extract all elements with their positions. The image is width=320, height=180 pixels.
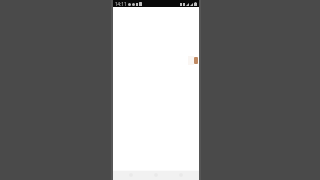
button[interactable]: Accent marker (194, 57, 198, 64)
button[interactable]: Home (149, 170, 163, 180)
button[interactable]: Recents (174, 170, 188, 180)
button[interactable]: Back (124, 170, 138, 180)
staticText: 14:11 (115, 1, 127, 7)
